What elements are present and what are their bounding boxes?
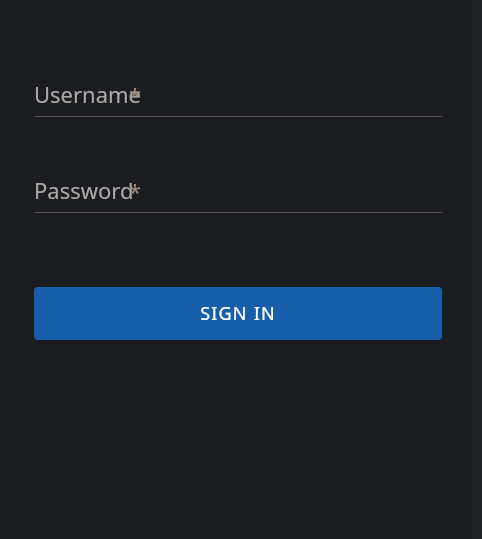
button[interactable]: Username bbox=[34, 79, 442, 117]
button[interactable]: SIGN IN bbox=[34, 287, 442, 340]
staticText: * bbox=[129, 80, 142, 110]
staticText: SIGN IN bbox=[200, 301, 276, 326]
staticText: Password bbox=[34, 175, 134, 205]
staticText: * bbox=[129, 176, 142, 206]
button[interactable]: Password bbox=[34, 175, 442, 213]
staticText: Username bbox=[34, 79, 142, 109]
